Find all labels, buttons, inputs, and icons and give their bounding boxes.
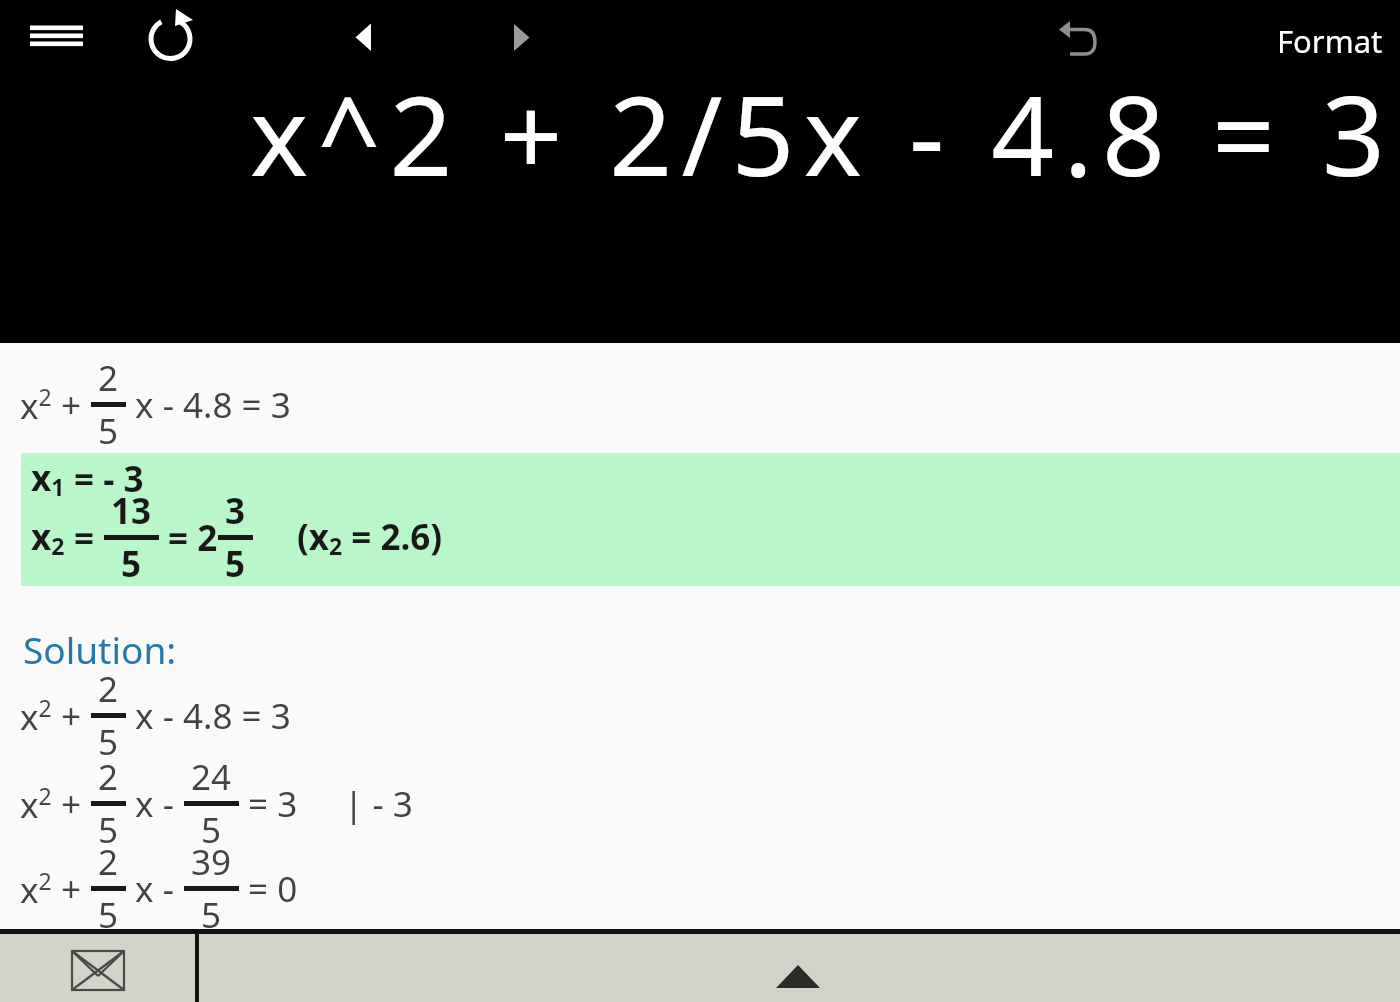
staticText: 5 [98, 407, 119, 455]
staticText: 2 [98, 838, 119, 886]
staticText: 13 [111, 487, 152, 535]
staticText: x - [126, 865, 184, 913]
staticText: x2 [20, 780, 52, 828]
staticText: Solution: [23, 624, 177, 674]
staticText: = 2 [159, 514, 218, 562]
staticText: = 0 [239, 865, 298, 913]
staticText: | - 3 [344, 780, 413, 828]
staticText: + [52, 692, 91, 740]
staticText: 5 [201, 806, 222, 854]
staticText: 2 [98, 753, 119, 801]
staticText: 3 [225, 487, 246, 535]
staticText: = [65, 514, 104, 562]
staticText: 2 [98, 354, 119, 402]
staticText: 5 [98, 806, 119, 854]
staticText: 5 [98, 891, 119, 939]
staticText: = - 3 [65, 455, 144, 503]
staticText: 5 [201, 891, 222, 939]
staticText: x2 [20, 692, 52, 740]
staticText: x^2 + 2/5x - 4.8 = 3 [250, 58, 1395, 208]
staticText: + [52, 381, 91, 429]
staticText: x2 [20, 381, 52, 429]
staticText: 39 [191, 838, 232, 886]
staticText: x2 [31, 513, 65, 562]
staticText: x - 4.8 = 3 [126, 381, 291, 429]
staticText: 5 [225, 540, 246, 588]
staticText: x - 4.8 = 3 [126, 692, 291, 740]
staticText: 2 [98, 665, 119, 713]
staticText: x2 [20, 865, 52, 913]
staticText: 24 [191, 753, 232, 801]
staticText: (x2 = 2.6) [297, 513, 443, 562]
staticText: + [52, 865, 91, 913]
staticText: = 3 [239, 780, 298, 828]
staticText: 5 [98, 718, 119, 766]
staticText: Format [1277, 20, 1383, 62]
staticText: x1 [31, 454, 65, 503]
staticText: x - [126, 780, 184, 828]
staticText: 5 [121, 540, 142, 588]
staticText: + [52, 780, 91, 828]
